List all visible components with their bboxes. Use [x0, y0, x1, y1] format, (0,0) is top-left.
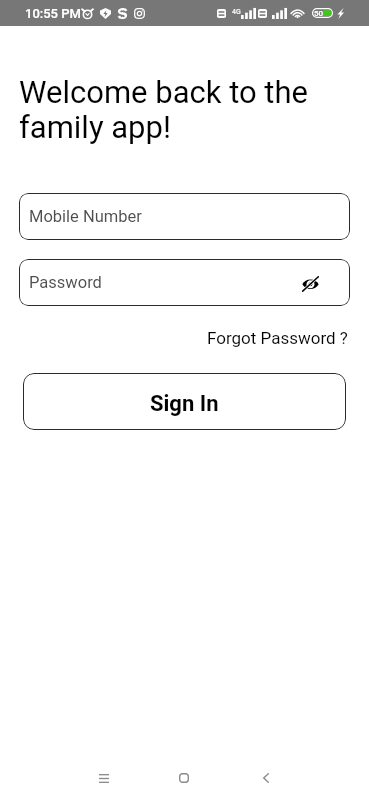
button[interactable]: Forgot Password ?: [207, 328, 348, 348]
button[interactable]: Recent apps: [80, 754, 128, 800]
button[interactable]: Sign In: [23, 373, 346, 430]
staticText: 10:55 PM: [25, 6, 81, 21]
button[interactable]: Back: [242, 754, 290, 800]
staticText: Forgot Password ?: [207, 328, 348, 348]
staticText: Welcome back to the family app!: [19, 74, 308, 145]
button[interactable]: Mobile Number: [19, 193, 350, 240]
staticText: Sign In: [150, 391, 219, 417]
staticText: Mobile Number: [29, 207, 142, 226]
button[interactable]: Home: [160, 754, 208, 800]
staticText: Password: [29, 273, 102, 292]
staticText: 4G: [232, 8, 241, 16]
button[interactable]: Show password: [299, 272, 321, 294]
staticText: 50: [314, 9, 324, 18]
button[interactable]: Password: [19, 259, 350, 306]
